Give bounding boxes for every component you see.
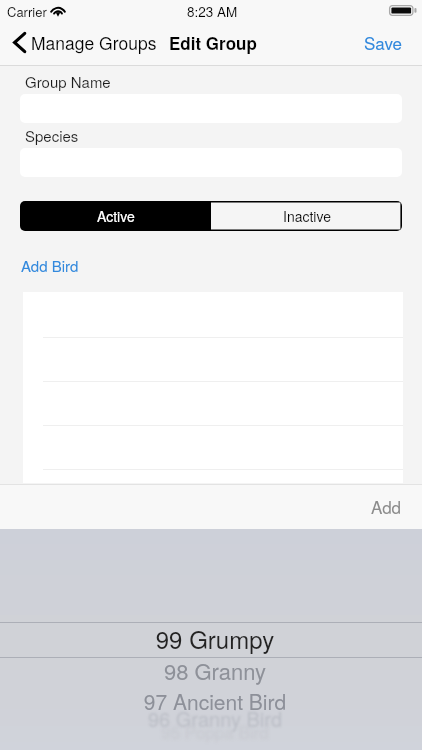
staticText: Inactive xyxy=(283,206,331,226)
button[interactable]: Save xyxy=(352,22,414,62)
staticText: Manage Groups xyxy=(31,30,157,55)
staticText: Add xyxy=(371,494,402,518)
staticText: 96 Granny Bird xyxy=(4,704,422,733)
staticText: Add Bird xyxy=(21,255,79,276)
staticText: 8:23 AM xyxy=(187,2,238,21)
staticText: Group Name xyxy=(25,71,111,92)
button[interactable] xyxy=(0,22,160,62)
button[interactable]: Inactive xyxy=(211,201,402,231)
staticText: 99 Grumpy xyxy=(4,621,422,655)
other: Back xyxy=(11,31,27,54)
staticText: 97 Ancient Bird xyxy=(4,686,422,716)
staticText: Save xyxy=(364,30,403,54)
staticText: Edit Group xyxy=(169,31,257,55)
button[interactable]: Add Bird xyxy=(15,250,95,277)
button[interactable]: Add xyxy=(358,486,414,526)
staticText: Carrier xyxy=(7,2,47,21)
staticText: Species xyxy=(25,125,79,146)
staticText: Active xyxy=(97,206,135,226)
staticText: 98 Granny xyxy=(4,655,422,687)
button[interactable]: Active xyxy=(20,201,211,231)
